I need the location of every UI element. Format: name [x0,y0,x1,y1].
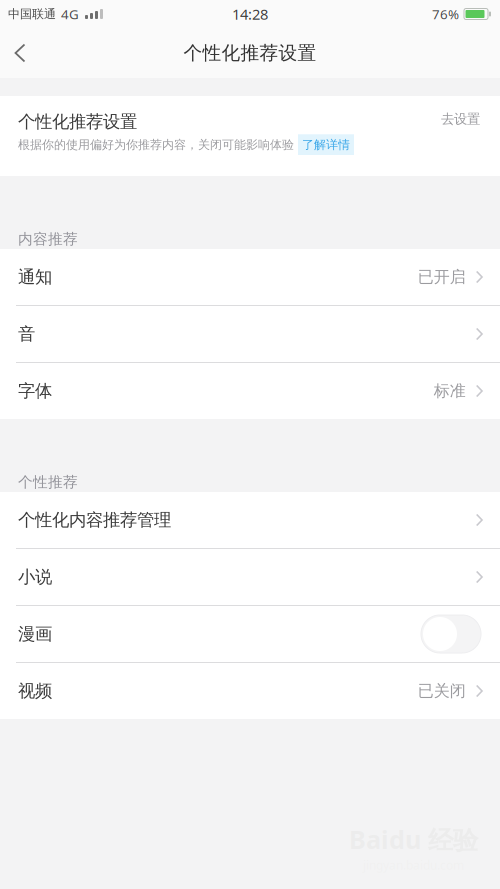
staticText: 了解详情 [302,137,350,152]
staticText: 字体 [18,380,52,402]
staticText: 标准 [434,381,466,401]
staticText: 音 [18,323,35,345]
staticText: 个性化内容推荐管理 [18,509,171,531]
button[interactable]: 漫画 [421,615,481,653]
staticText: 通知 [18,266,52,288]
button[interactable]: 小说 [0,549,500,605]
staticText: 视频 [18,680,52,702]
staticText: 小说 [18,566,52,588]
button[interactable]: 音 [0,306,500,362]
button[interactable]: 返回 [0,28,46,78]
staticText: 已关闭 [418,681,466,701]
staticText: 4G [61,5,79,23]
button[interactable]: 个性化内容推荐管理 [0,492,500,548]
button[interactable]: 字体 [0,363,500,419]
button[interactable]: 个性化推荐设置 [0,96,500,176]
staticText: 根据你的使用偏好为你推荐内容，关闭可能影响体验 [18,137,298,152]
staticText: 个性化推荐设置 [183,41,316,64]
staticText: 个性化推荐设置 [18,111,137,132]
staticText: 76% [432,5,459,23]
button[interactable]: 通知 [0,249,500,305]
staticText: 去设置 [441,111,480,127]
staticText: 漫画 [18,623,52,645]
staticText: Baidu 经验 [349,822,478,856]
staticText: 内容推荐 [18,230,78,248]
button[interactable]: 视频 [0,663,500,719]
staticText: 已开启 [418,267,466,287]
staticText: 中国联通 [8,7,56,21]
staticText: 14:28 [232,4,268,24]
staticText: 个性推荐 [18,473,78,491]
